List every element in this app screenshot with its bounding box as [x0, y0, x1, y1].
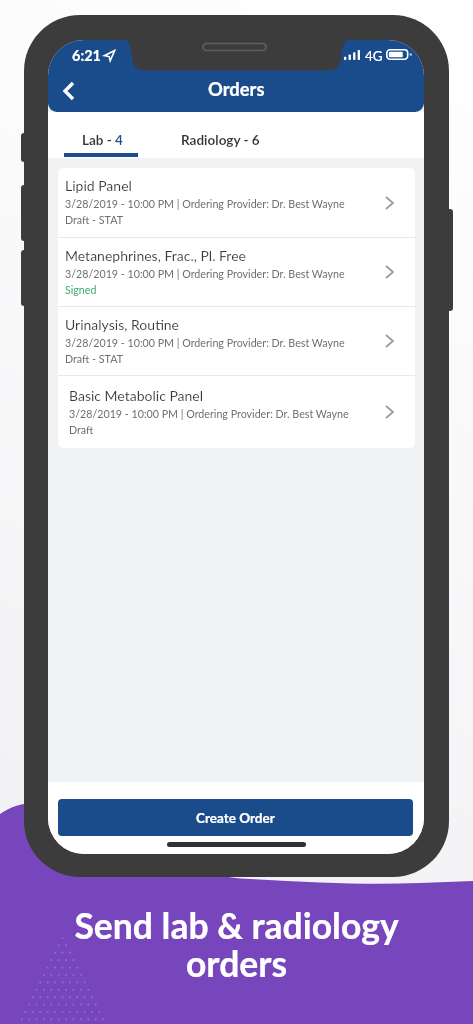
- staticText: Lab - 4: [82, 132, 123, 148]
- button[interactable]: Urinalysis, Routine: [58, 307, 415, 375]
- staticText: Metanephrines, Frac., Pl. Free: [65, 247, 246, 264]
- staticText: 6:21: [72, 47, 101, 64]
- button[interactable]: Lab - 4: [48, 112, 157, 158]
- staticText: Radiology - 6: [181, 132, 260, 148]
- button[interactable]: Back: [48, 70, 92, 112]
- button[interactable]: Basic Metabolic Panel: [58, 376, 415, 448]
- staticText: 3/28/2019 - 10:00 PM | Ordering Provider…: [65, 197, 345, 210]
- button[interactable]: Radiology - 6: [157, 112, 277, 158]
- staticText: 3/28/2019 - 10:00 PM | Ordering Provider…: [69, 407, 349, 420]
- staticText: Urinalysis, Routine: [65, 316, 179, 333]
- staticText: 3/28/2019 - 10:00 PM | Ordering Provider…: [65, 336, 345, 349]
- staticText: Draft: [69, 423, 94, 436]
- button[interactable]: Lipid Panel: [58, 168, 415, 237]
- staticText: 4G: [365, 48, 383, 64]
- staticText: 3/28/2019 - 10:00 PM | Ordering Provider…: [65, 267, 345, 280]
- staticText: Create Order: [196, 810, 275, 826]
- staticText: Basic Metabolic Panel: [69, 387, 204, 404]
- staticText: Lipid Panel: [65, 177, 132, 194]
- staticText: Signed: [65, 283, 97, 296]
- button[interactable]: Metanephrines, Frac., Pl. Free: [58, 238, 415, 306]
- staticText: Draft - STAT: [65, 352, 123, 365]
- staticText: Draft - STAT: [65, 213, 123, 226]
- staticText: Orders: [208, 78, 265, 100]
- staticText: Send lab & radiology orders: [0, 904, 473, 984]
- button[interactable]: Create Order: [58, 799, 413, 836]
